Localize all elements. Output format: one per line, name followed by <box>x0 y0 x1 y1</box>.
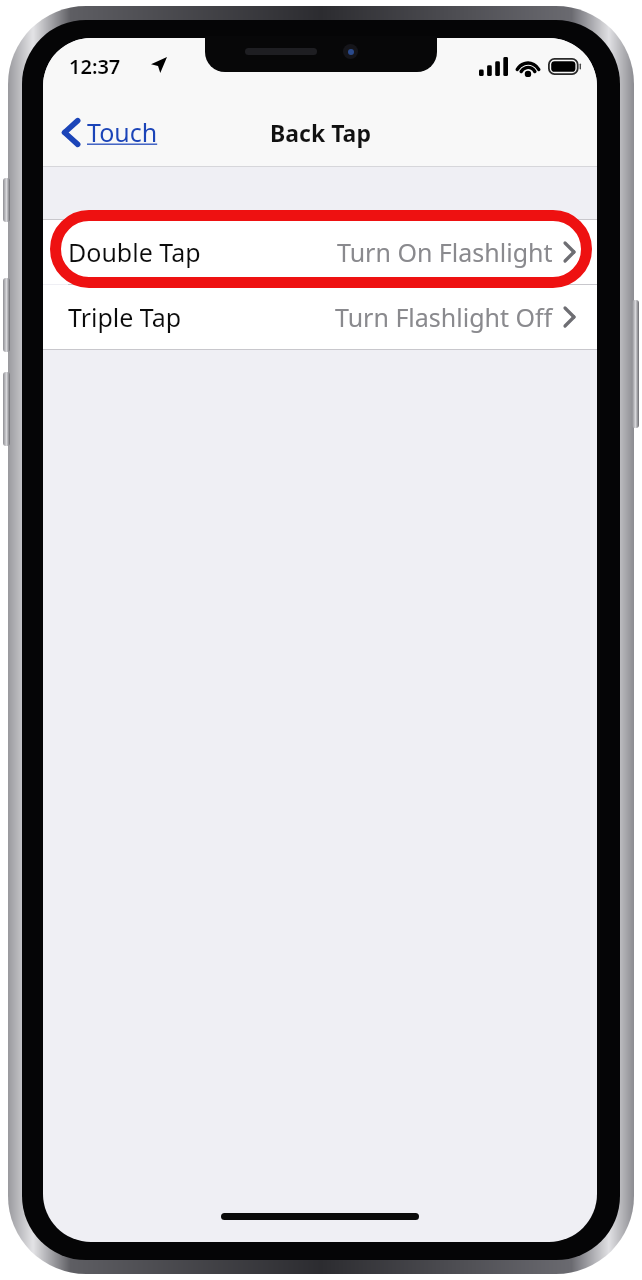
staticText: Turn On Flashlight <box>337 235 553 269</box>
staticText: 12:37 <box>69 53 121 80</box>
other: Cellular signal <box>479 57 508 76</box>
button[interactable]: Triple Tap <box>43 285 597 349</box>
button[interactable]: Touch <box>57 109 164 155</box>
staticText: Touch <box>87 115 158 149</box>
button[interactable]: Double Tap <box>43 220 597 284</box>
other: Wi-Fi <box>515 57 541 76</box>
staticText: Triple Tap <box>68 300 182 334</box>
staticText: Turn Flashlight Off <box>335 300 553 334</box>
other: Battery <box>548 58 582 75</box>
staticText: Double Tap <box>68 235 201 269</box>
staticText: Back Tap <box>270 117 371 148</box>
